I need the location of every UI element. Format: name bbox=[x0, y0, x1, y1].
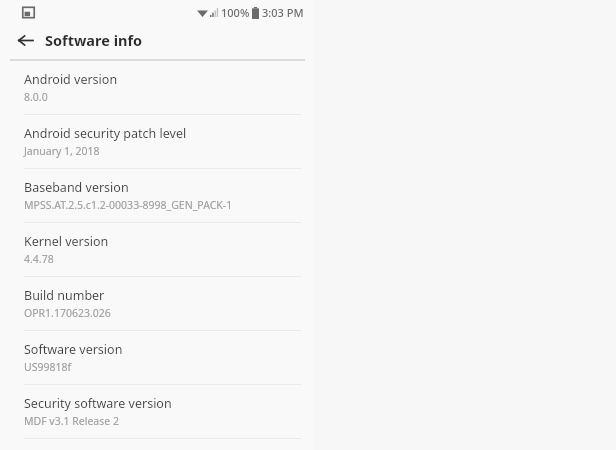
staticText: OPR1.170623.026 bbox=[24, 306, 111, 320]
staticText: MDF v3.1 Release 2 bbox=[24, 414, 119, 428]
staticText: Android security patch level bbox=[24, 125, 187, 142]
staticText: Software version bbox=[24, 341, 123, 358]
staticText: Baseband version bbox=[24, 179, 129, 196]
staticText: January 1, 2018 bbox=[24, 144, 100, 158]
staticText: MPSS.AT.2.5.c1.2-00033-8998_GEN_PACK-1 bbox=[24, 198, 233, 212]
button[interactable]: Kernel version bbox=[0, 223, 313, 276]
staticText: 4.4.78 bbox=[24, 252, 54, 266]
staticText: US99818f bbox=[24, 360, 72, 374]
staticText: Android version bbox=[24, 71, 118, 88]
button[interactable]: Android version bbox=[0, 61, 313, 114]
staticText: 100% bbox=[221, 5, 250, 20]
button[interactable]: Security software version bbox=[0, 385, 313, 438]
staticText: Kernel version bbox=[24, 233, 109, 250]
staticText: Security software version bbox=[24, 395, 172, 412]
button[interactable]: Software version bbox=[0, 331, 313, 384]
staticText: 8.0.0 bbox=[24, 90, 48, 104]
button[interactable]: Screenshot captured bbox=[22, 6, 35, 19]
button[interactable]: Back bbox=[14, 29, 36, 51]
button[interactable]: Build number bbox=[0, 277, 313, 330]
button[interactable]: Android security patch level bbox=[0, 115, 313, 168]
button[interactable]: Baseband version bbox=[0, 169, 313, 222]
staticText: 3:03 PM bbox=[262, 5, 304, 20]
staticText: Build number bbox=[24, 287, 105, 304]
staticText: Software info bbox=[45, 30, 143, 50]
